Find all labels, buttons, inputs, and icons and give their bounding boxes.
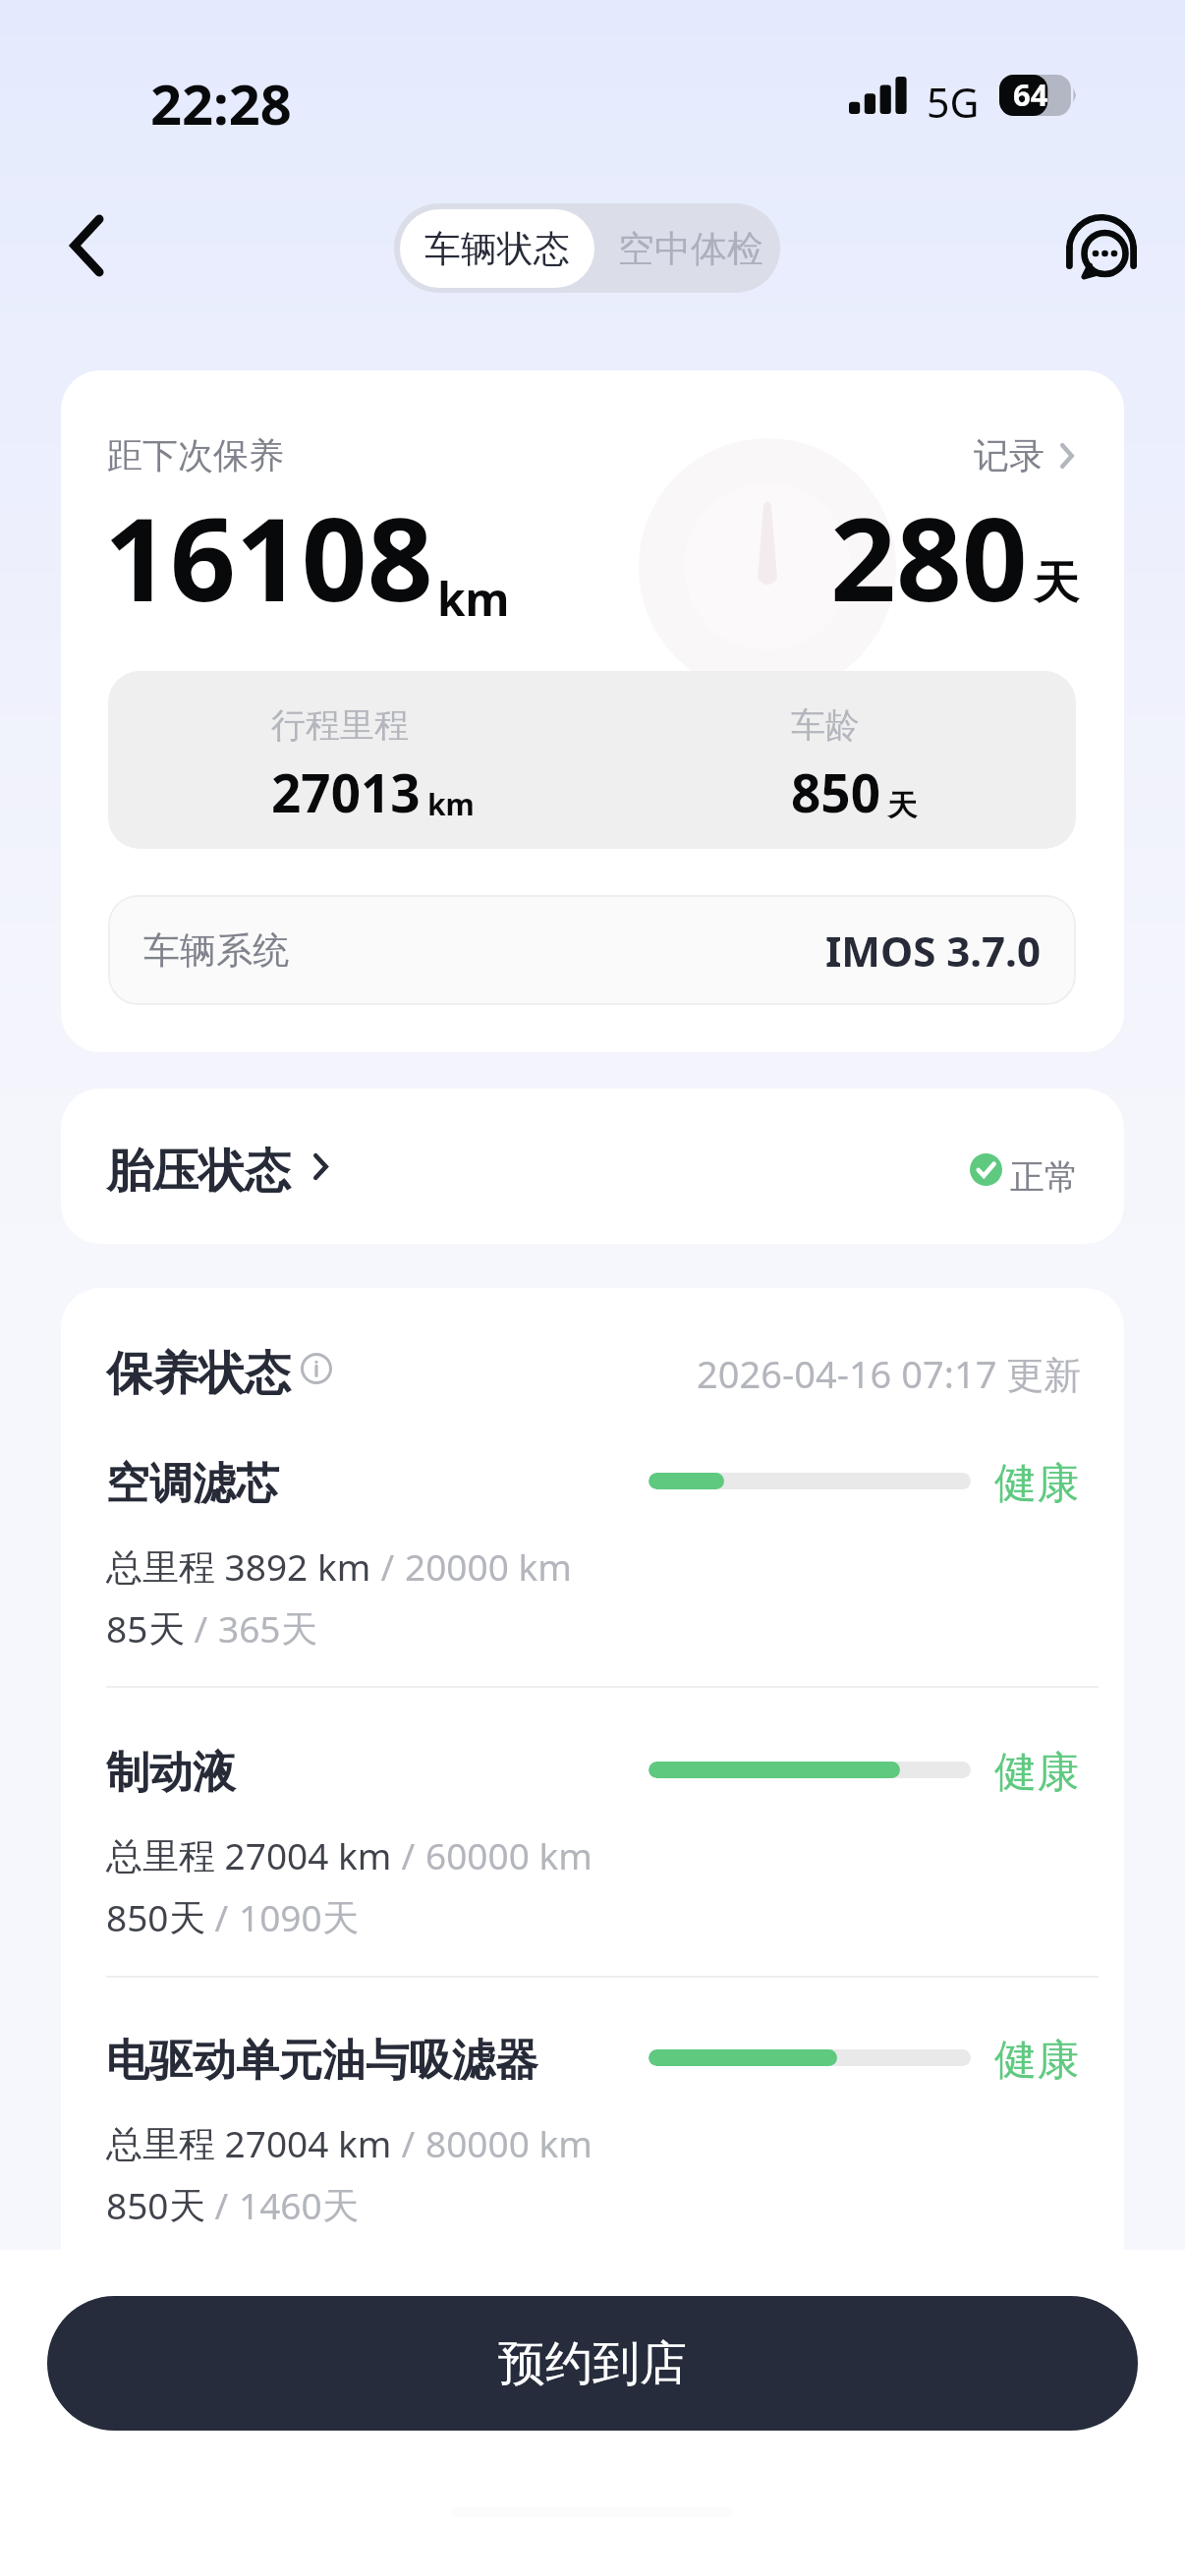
button[interactable]: 车辆系统 (108, 895, 1076, 1005)
staticText: 天 (169, 1895, 205, 1941)
staticText: 车辆系统 (143, 927, 289, 974)
staticText: 电驱动单元油与吸滤器 (106, 2034, 538, 2088)
staticText: 3892 km (215, 1541, 371, 1591)
staticText: 天 (322, 2183, 359, 2229)
staticText: 1090 (239, 1892, 322, 1941)
staticText: 1460 (239, 2180, 322, 2229)
button[interactable]: Back (33, 193, 140, 299)
staticText: 280 (830, 478, 1028, 635)
button[interactable]: 预约到店 (47, 2296, 1138, 2431)
staticText: / (392, 2118, 425, 2167)
staticText: 天 (887, 787, 917, 824)
staticText: / (205, 1892, 239, 1941)
staticText: 车龄 (791, 703, 860, 747)
staticText: / (205, 2180, 239, 2229)
button[interactable]: Customer service (1047, 193, 1156, 301)
staticText: 健康 (994, 2034, 1079, 2087)
staticText: 天 (1034, 555, 1079, 612)
staticText: 80000 km (425, 2118, 592, 2167)
staticText: / (185, 1603, 218, 1652)
button[interactable]: 车辆状态 (400, 209, 594, 288)
staticText: 27013 (271, 756, 421, 827)
staticText: / (371, 1541, 405, 1591)
staticText: 64 (1013, 74, 1048, 115)
staticText: 预约到店 (498, 2334, 687, 2393)
staticText: 5G (927, 75, 980, 130)
staticText: 总里程 (106, 1833, 215, 1879)
staticText: 60000 km (425, 1830, 592, 1879)
staticText: 总里程 (106, 1544, 215, 1591)
staticText: 健康 (994, 1457, 1079, 1510)
staticText: 记录 (974, 433, 1044, 477)
staticText: 总里程 (106, 2121, 215, 2167)
staticText: 20000 km (405, 1541, 572, 1591)
staticText: 天 (322, 1895, 359, 1941)
staticText: 空调滤芯 (106, 1457, 279, 1511)
staticText: 制动液 (106, 1746, 236, 1800)
staticText: 22:28 (150, 66, 292, 140)
staticText: 行程里程 (271, 703, 409, 747)
staticText: 天 (148, 1606, 185, 1652)
staticText: 天 (169, 2183, 205, 2229)
staticText: 27004 km (215, 1830, 392, 1879)
button[interactable]: 胎压状态 (61, 1089, 1124, 1244)
staticText: 850 (791, 756, 880, 827)
staticText: 2026-04-16 07:17 更新 (697, 1348, 1082, 1399)
staticText: 850 (106, 1892, 169, 1941)
staticText: 空中体检 (618, 226, 763, 272)
staticText: 胎压状态 (106, 1143, 291, 1201)
staticText: 车辆状态 (424, 226, 570, 272)
staticText: km (437, 568, 510, 630)
staticText: / (392, 1830, 425, 1879)
staticText: 16108 (104, 478, 433, 635)
staticText: 850 (106, 2180, 169, 2229)
button[interactable]: 空中体检 (594, 209, 780, 288)
staticText: 健康 (994, 1746, 1079, 1799)
button[interactable]: 记录 (974, 433, 1074, 477)
staticText: 85 (106, 1603, 148, 1652)
staticText: 保养状态 (106, 1345, 291, 1403)
staticText: 距下次保养 (107, 433, 284, 477)
staticText: 27004 km (215, 2118, 392, 2167)
staticText: 正常 (1010, 1155, 1079, 1199)
staticText: 365 (218, 1603, 281, 1652)
staticText: 天 (281, 1606, 317, 1652)
staticText: IMOS 3.7.0 (825, 923, 1041, 979)
staticText: km (427, 784, 475, 824)
